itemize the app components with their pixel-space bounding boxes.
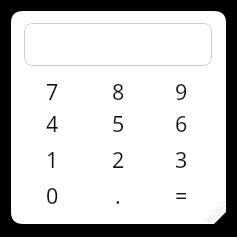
button[interactable] [24, 23, 212, 66]
button[interactable]: 5 [90, 107, 146, 139]
staticText: 9 [175, 77, 188, 106]
button[interactable]: 8 [90, 75, 146, 107]
button[interactable]: 0 [24, 179, 80, 211]
button[interactable]: 4 [24, 107, 80, 139]
staticText: 1 [46, 145, 59, 174]
staticText: 5 [112, 109, 125, 138]
button[interactable]: 1 [24, 143, 80, 175]
button[interactable]: 3 [153, 143, 209, 175]
button[interactable]: = [153, 179, 209, 211]
staticText: 4 [46, 109, 59, 138]
button[interactable]: 7 [24, 75, 80, 107]
staticText: = [175, 181, 188, 210]
staticText: . [115, 181, 121, 210]
button[interactable]: . [90, 179, 146, 211]
staticText: 7 [46, 77, 59, 106]
button[interactable]: 9 [153, 75, 209, 107]
button[interactable]: 6 [153, 107, 209, 139]
staticText: 2 [112, 145, 125, 174]
button[interactable]: 2 [90, 143, 146, 175]
staticText: 6 [175, 109, 188, 138]
staticText: 8 [112, 77, 125, 106]
staticText: 3 [175, 145, 188, 174]
staticText: 0 [46, 181, 59, 210]
